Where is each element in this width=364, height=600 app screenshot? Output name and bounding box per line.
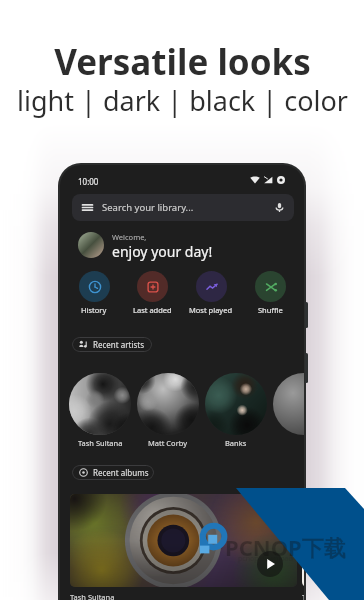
other: Play [257, 551, 283, 577]
staticText: Search your library... [102, 201, 194, 214]
staticText: Recent artists [93, 339, 145, 350]
button[interactable] [137, 373, 199, 435]
staticText: Tash Sultana [70, 592, 115, 600]
button[interactable] [205, 373, 267, 435]
button[interactable]: Shuffle [241, 270, 299, 316]
staticText: PCNOP下载 [225, 532, 346, 562]
staticText: Shuffle [258, 305, 283, 315]
button[interactable]: Play [70, 494, 297, 587]
button[interactable]: Recent artists [72, 337, 152, 352]
staticText: Last added [133, 305, 172, 315]
staticText: Banks [225, 438, 247, 448]
staticText: Welcome, [112, 232, 147, 242]
staticText: light | dark | black | color [17, 82, 348, 119]
staticText: History [81, 305, 107, 315]
other: Voice search [274, 202, 285, 213]
staticText: Matt Corby [148, 438, 188, 448]
staticText: Recent albums [93, 467, 149, 478]
button[interactable]: Search your library... [72, 194, 294, 221]
staticText: Tash Sultana [78, 438, 123, 448]
button[interactable] [69, 373, 131, 435]
staticText: enjoy your day! [112, 242, 213, 261]
button[interactable]: Recent albums [72, 465, 154, 480]
staticText: pcnop download [238, 554, 293, 564]
staticText: Most played [189, 305, 233, 315]
button[interactable]: Last added [123, 270, 181, 316]
staticText: 10:00 [78, 176, 99, 187]
button[interactable]: Most played [182, 270, 240, 316]
staticText: Tas [302, 592, 304, 600]
button[interactable]: History [65, 270, 123, 316]
staticText: Versatile looks [54, 38, 311, 86]
